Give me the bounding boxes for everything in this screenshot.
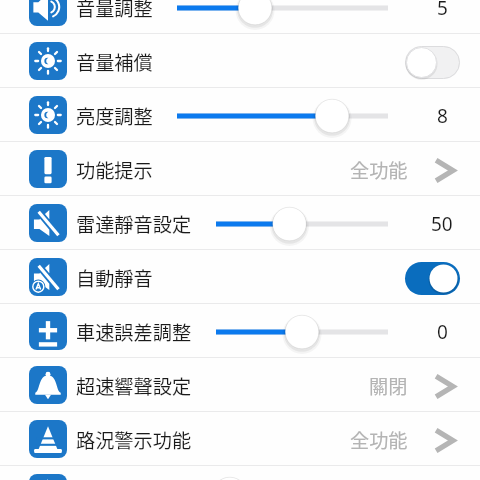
staticText: 雷達靜音設定: [76, 210, 192, 238]
staticText: 50: [431, 211, 453, 237]
button[interactable]: 路況警示功能: [0, 412, 480, 466]
button[interactable]: 車速誤差調整: [0, 304, 480, 358]
staticText: 全功能: [350, 156, 408, 184]
staticText: 亮度調整: [76, 102, 153, 130]
button[interactable]: 音量補償: [0, 34, 480, 88]
staticText: 全功能: [350, 426, 408, 454]
staticText: 超速響聲設定: [76, 372, 192, 400]
other: Toggle off: [405, 46, 460, 79]
button[interactable]: 超速響聲設定: [0, 358, 480, 412]
other: Open: [434, 157, 455, 184]
other: Toggle on: [405, 262, 460, 295]
button[interactable]: 雷達提示音量: [0, 466, 480, 480]
other: Open: [434, 427, 455, 454]
staticText: 路況警示功能: [76, 426, 192, 454]
staticText: 關閉: [369, 372, 408, 400]
button[interactable]: 功能提示: [0, 142, 480, 196]
staticText: 音量補償: [76, 48, 153, 76]
button[interactable]: 音量調整: [0, 0, 480, 34]
staticText: 5: [437, 0, 448, 21]
staticText: 0: [437, 319, 448, 345]
staticText: 8: [437, 103, 448, 129]
other: Open: [434, 373, 455, 400]
button[interactable]: 自動靜音: [0, 250, 480, 304]
staticText: 功能提示: [76, 156, 153, 184]
staticText: 音量調整: [76, 0, 153, 22]
staticText: 車速誤差調整: [76, 318, 192, 346]
button[interactable]: 亮度調整: [0, 88, 480, 142]
staticText: 自動靜音: [76, 264, 153, 292]
button[interactable]: 雷達靜音設定: [0, 196, 480, 250]
